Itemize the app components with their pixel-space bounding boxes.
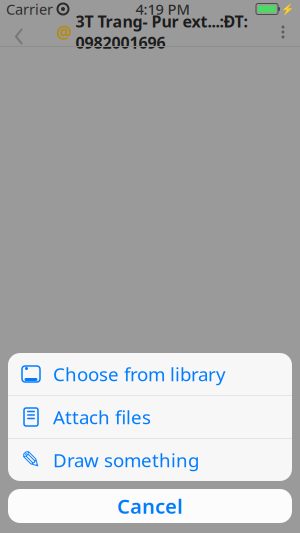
staticText: @ xyxy=(56,20,72,43)
button[interactable]: Back xyxy=(2,18,36,46)
staticText: 3T Trang- Pur ext...:ĐT:0982001696 xyxy=(75,11,247,53)
button[interactable]: Choose from library xyxy=(8,353,292,395)
staticText: Draw something xyxy=(53,448,199,472)
button[interactable]: More options xyxy=(268,18,298,46)
staticText: Choose from library xyxy=(53,362,226,386)
staticText: 4:19 PM xyxy=(135,0,189,19)
staticText: Cancel xyxy=(117,493,183,519)
staticText: Carrier xyxy=(6,0,53,19)
staticText: ✎ xyxy=(21,446,41,474)
staticText: ⚡ xyxy=(281,3,294,15)
button[interactable]: ✎ xyxy=(8,439,292,481)
staticText: Attach files xyxy=(53,405,151,429)
button[interactable]: Attach files xyxy=(8,396,292,438)
staticText: ‹ xyxy=(13,5,24,58)
button[interactable]: Cancel xyxy=(8,489,292,523)
